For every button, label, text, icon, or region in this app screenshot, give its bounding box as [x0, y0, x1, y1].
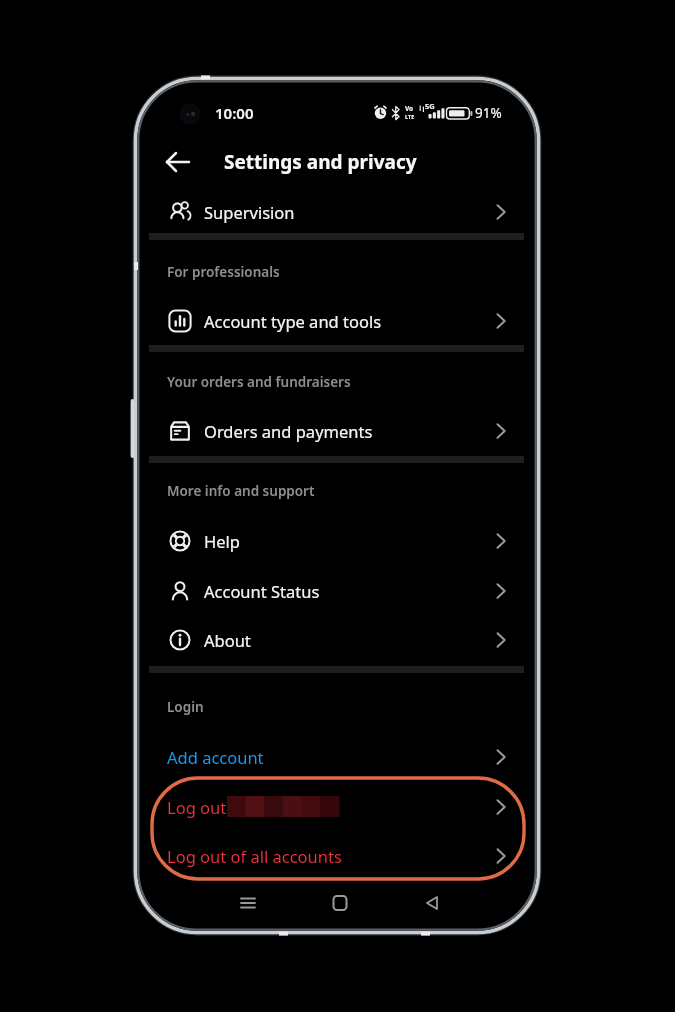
staticText: LTE: [405, 113, 415, 120]
staticText: Account type and tools: [204, 310, 382, 332]
button[interactable]: Log out: [141, 782, 531, 832]
staticText: For professionals: [167, 263, 280, 281]
staticText: Orders and payments: [204, 420, 373, 442]
staticText: Your orders and fundraisers: [167, 373, 351, 391]
staticText: 5G: [425, 101, 435, 111]
staticText: Settings and privacy: [224, 149, 417, 175]
button[interactable]: [155, 142, 201, 182]
staticText: Log out of all accounts: [167, 845, 342, 867]
staticText: About: [204, 629, 251, 651]
staticText: 91%: [475, 104, 502, 122]
staticText: Add account: [167, 746, 264, 768]
staticText: More info and support: [167, 482, 315, 500]
button[interactable]: Account type and tools: [141, 296, 531, 346]
button[interactable]: Add account: [141, 732, 531, 782]
staticText: Help: [204, 530, 240, 552]
button[interactable]: Log out of all accounts: [141, 831, 531, 881]
button[interactable]: [310, 883, 370, 923]
button[interactable]: Orders and payments: [141, 406, 531, 456]
staticText: Vo: [405, 104, 414, 112]
button[interactable]: [402, 883, 462, 923]
staticText: Supervision: [204, 201, 295, 223]
button[interactable]: Supervision: [141, 187, 531, 237]
staticText: Login: [167, 698, 204, 716]
staticText: 10:00: [215, 103, 254, 123]
button[interactable]: About: [141, 615, 531, 665]
button[interactable]: [218, 883, 278, 923]
staticText: Account Status: [204, 580, 320, 602]
button[interactable]: Account Status: [141, 566, 531, 616]
button[interactable]: Help: [141, 516, 531, 566]
staticText: Log out: [167, 796, 227, 818]
